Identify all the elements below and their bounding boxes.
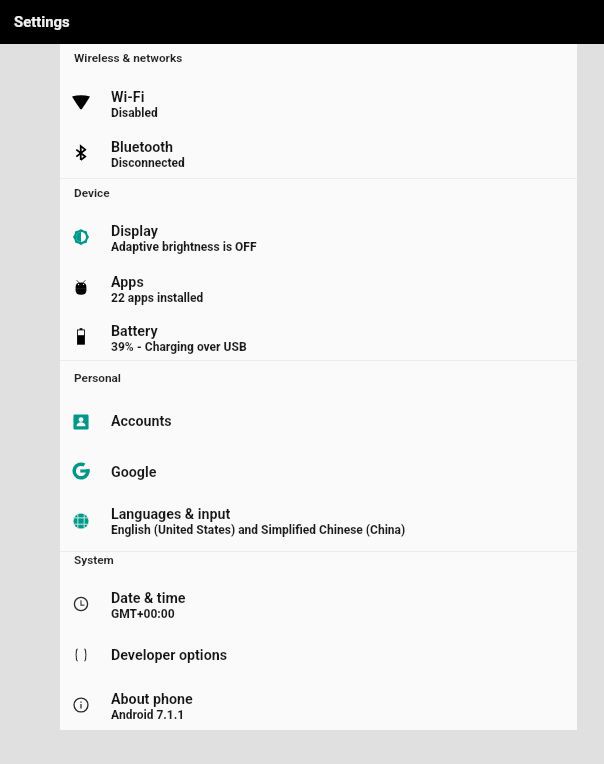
other: Display (69, 225, 93, 249)
staticText: Developer options (111, 647, 227, 664)
staticText: System (74, 553, 114, 567)
staticText: Settings (14, 13, 70, 30)
button[interactable]: Google (60, 440, 577, 490)
staticText: Disabled (111, 106, 158, 120)
button[interactable]: Languages and input (60, 484, 577, 534)
other: Accounts (69, 408, 93, 432)
staticText: 22 apps installed (111, 291, 204, 305)
staticText: Android 7.1.1 (111, 708, 185, 722)
other: Languages and input (69, 507, 93, 531)
staticText: Display (111, 223, 158, 240)
staticText: Date & time (111, 590, 186, 607)
staticText: Disconnected (111, 156, 185, 170)
staticText: Apps (111, 274, 144, 291)
other: Google (69, 459, 93, 483)
button[interactable]: Developer options (60, 624, 577, 674)
other: Battery (69, 325, 93, 349)
button[interactable]: Battery (60, 301, 577, 351)
staticText: 39% - Charging over USB (111, 340, 247, 354)
staticText: About phone (111, 691, 193, 708)
button[interactable]: Date and time (60, 568, 577, 618)
button[interactable]: Display (60, 201, 577, 251)
other: Date and time (69, 592, 93, 616)
staticText: Languages & input (111, 506, 231, 523)
staticText: Personal (74, 371, 121, 385)
staticText: Adaptive brightness is OFF (111, 240, 257, 254)
staticText: English (United States) and Simplified C… (111, 523, 406, 537)
staticText: Battery (111, 323, 158, 340)
staticText: Accounts (111, 413, 172, 430)
other: About phone (69, 693, 93, 717)
other: Bluetooth (69, 141, 93, 165)
other: Wi-Fi (69, 91, 93, 115)
button[interactable]: Apps (60, 252, 577, 302)
button[interactable]: About phone (60, 669, 577, 719)
staticText: Wireless & networks (74, 51, 183, 65)
staticText: GMT+00:00 (111, 607, 175, 621)
other: Apps (69, 276, 93, 300)
button[interactable]: Bluetooth (60, 116, 577, 166)
staticText: Bluetooth (111, 139, 174, 156)
other: Developer options (69, 643, 93, 667)
button[interactable]: Accounts (60, 390, 577, 440)
staticText: Device (74, 186, 110, 200)
button[interactable]: Wi-Fi (60, 66, 577, 116)
staticText: Google (111, 464, 157, 481)
staticText: Wi-Fi (111, 89, 145, 106)
